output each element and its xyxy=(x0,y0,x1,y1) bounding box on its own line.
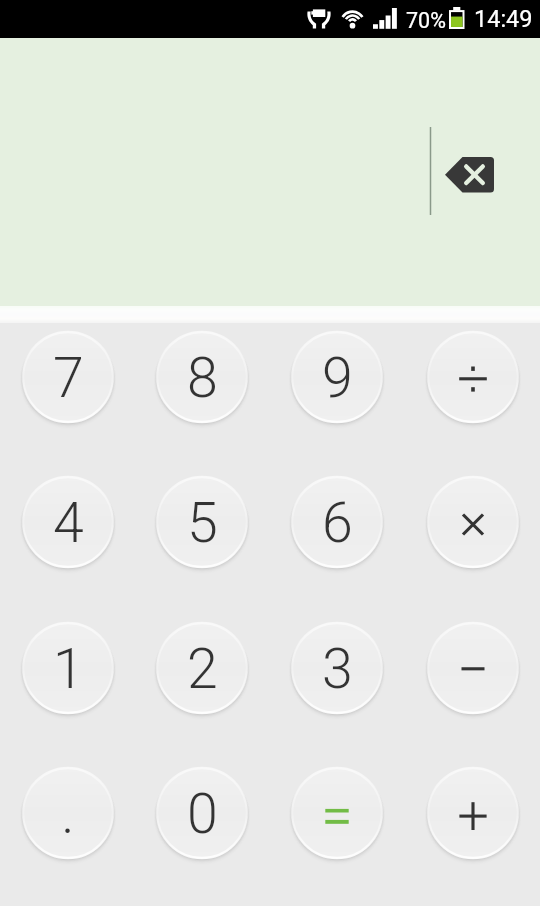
staticText: . xyxy=(61,782,75,847)
button[interactable] xyxy=(426,330,520,424)
button[interactable]: 6 xyxy=(290,475,384,569)
button[interactable] xyxy=(426,766,520,860)
staticText: 8 xyxy=(187,346,218,411)
button[interactable]: 4 xyxy=(21,475,115,569)
staticText: 2 xyxy=(187,637,218,702)
button[interactable]: 0 xyxy=(155,766,249,860)
button[interactable]: 5 xyxy=(155,475,249,569)
button[interactable]: 2 xyxy=(155,621,249,715)
button[interactable]: 9 xyxy=(290,330,384,424)
button[interactable]: 7 xyxy=(21,330,115,424)
button[interactable] xyxy=(426,621,520,715)
staticText: 1 xyxy=(53,637,84,702)
staticText: 14:49 xyxy=(474,5,533,33)
button[interactable] xyxy=(290,766,384,860)
staticText: 6 xyxy=(322,491,353,556)
staticText: 0 xyxy=(187,782,218,847)
button[interactable]: Backspace xyxy=(433,145,506,208)
staticText: 4 xyxy=(53,491,84,556)
button[interactable]: . xyxy=(21,766,115,860)
button[interactable] xyxy=(426,475,520,569)
staticText: 70% xyxy=(406,8,446,33)
button[interactable]: 3 xyxy=(290,621,384,715)
staticText: 3 xyxy=(322,637,353,702)
staticText: 9 xyxy=(322,346,353,411)
staticText: 7 xyxy=(53,346,84,411)
button[interactable]: 1 xyxy=(21,621,115,715)
staticText: 5 xyxy=(187,491,218,556)
button[interactable]: 8 xyxy=(155,330,249,424)
